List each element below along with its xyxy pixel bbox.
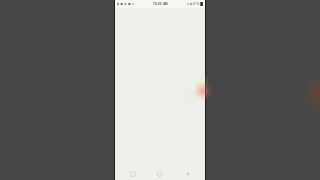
staticText: 81% bbox=[193, 2, 199, 6]
staticText: 10:25 AM bbox=[153, 2, 167, 6]
button[interactable]: Back bbox=[175, 167, 199, 180]
button[interactable]: Home bbox=[147, 167, 171, 180]
button[interactable]: Recent apps bbox=[121, 167, 145, 180]
